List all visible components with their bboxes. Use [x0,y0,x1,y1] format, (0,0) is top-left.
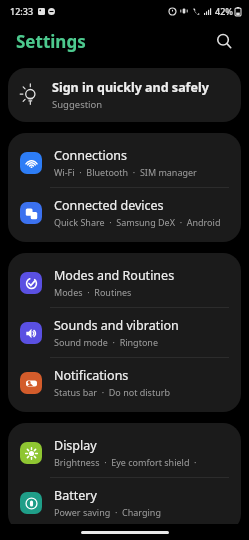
staticText: Wi-Fi · Bluetooth · SIM manager [54,166,197,178]
staticText: Sign in quickly and safely [52,79,209,96]
staticText: Sounds and vibration [54,317,179,334]
staticText: Connections [54,147,127,164]
staticText: Modes · Routines [54,286,132,298]
staticText: Settings [16,30,86,53]
button[interactable]: Search [207,24,241,58]
button[interactable]: Notifications [8,358,241,407]
staticText: Suggestion [52,98,103,111]
button[interactable]: Display [8,428,241,477]
button[interactable]: Battery [8,478,241,524]
button[interactable]: Modes and Routines [8,258,241,307]
staticText: Battery [54,487,97,504]
button[interactable]: Connected devices [8,188,241,237]
staticText: Connected devices [54,197,164,214]
staticText: Power saving · Charging [54,506,161,518]
button[interactable]: Connections [8,138,241,187]
button[interactable]: Sign in quickly and safely [8,68,241,122]
staticText: Display [54,437,97,454]
staticText: Sound mode · Ringtone [54,336,158,348]
staticText: Brightness · Eye comfort shield · Naviga… [54,456,231,468]
staticText: Modes and Routines [54,267,175,284]
staticText: Status bar · Do not disturb [54,386,170,398]
button[interactable]: Sounds and vibration [8,308,241,357]
staticText: 42% [215,5,233,17]
staticText: Quick Share · Samsung DeX · Android Auto [54,216,231,228]
staticText: 12:33 [10,5,34,17]
staticText: Notifications [54,367,129,384]
